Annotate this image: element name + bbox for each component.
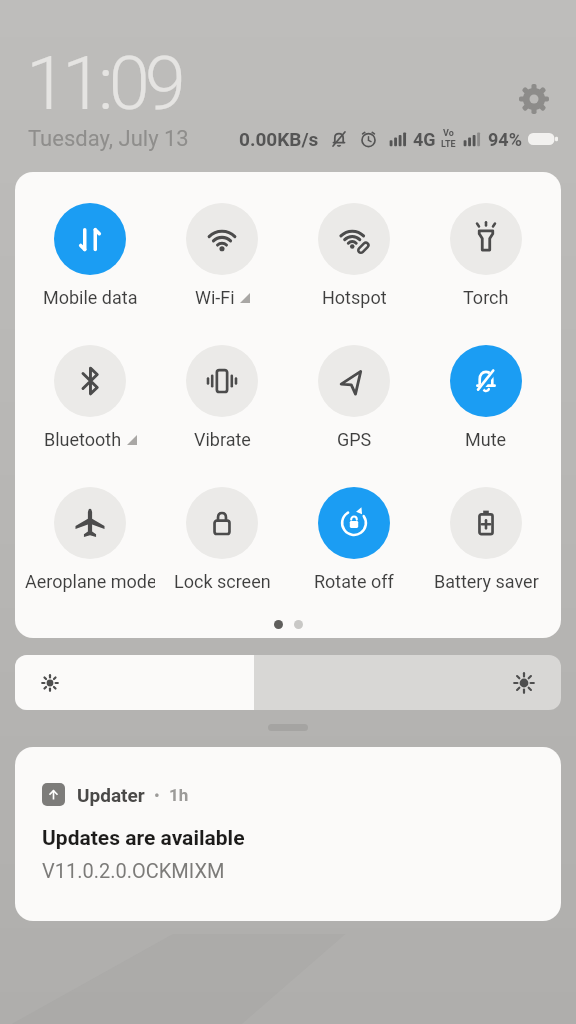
staticText: 4G: [413, 129, 436, 150]
staticText: Mute: [465, 429, 507, 450]
staticText: Wi-Fi: [195, 287, 235, 308]
staticText: Vibrate: [194, 429, 251, 450]
staticText: Rotate off: [314, 571, 394, 592]
staticText: Aeroplane mode: [25, 571, 155, 592]
staticText: LTE: [441, 139, 456, 150]
button[interactable]: Torch: [421, 203, 551, 308]
staticText: Bluetooth: [44, 429, 122, 450]
button[interactable]: Wi-Fi: [157, 203, 287, 308]
staticText: V11.0.2.0.OCKMIXM: [42, 859, 225, 882]
staticText: Battery saver: [434, 571, 539, 592]
button[interactable]: Mobile data: [25, 203, 155, 308]
staticText: 0.00KB/s: [239, 128, 319, 150]
staticText: Mobile data: [43, 287, 138, 308]
staticText: 94%: [488, 129, 522, 150]
button[interactable]: Battery saver: [421, 487, 551, 592]
staticText: Updates are available: [42, 826, 245, 851]
button[interactable]: [519, 84, 549, 114]
button[interactable]: GPS: [289, 345, 419, 450]
staticText: Hotspot: [322, 287, 387, 308]
staticText: GPS: [337, 429, 372, 450]
staticText: 1h: [169, 785, 189, 805]
staticText: Torch: [463, 287, 509, 308]
staticText: Vo: [443, 128, 454, 139]
button[interactable]: [15, 655, 561, 710]
staticText: Tuesday, July 13: [28, 126, 189, 152]
button[interactable]: Hotspot: [289, 203, 419, 308]
button[interactable]: Vibrate: [157, 345, 287, 450]
button[interactable]: Aeroplane mode: [25, 487, 155, 592]
button[interactable]: Lock screen: [157, 487, 287, 592]
staticText: Updater: [77, 784, 145, 806]
staticText: 11:09: [26, 40, 181, 127]
button[interactable]: Rotate off: [289, 487, 419, 592]
button[interactable]: Updater: [15, 747, 561, 921]
button[interactable]: Bluetooth: [25, 345, 155, 450]
staticText: •: [154, 785, 160, 805]
button[interactable]: Mute: [421, 345, 551, 450]
staticText: Lock screen: [174, 571, 271, 592]
